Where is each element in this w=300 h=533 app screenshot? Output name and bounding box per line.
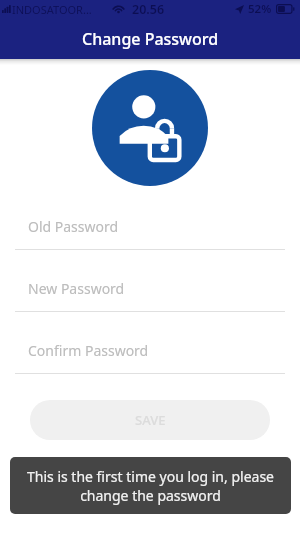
staticText: Old Password [28,217,119,236]
staticText: Change Password [82,28,219,50]
staticText: INDOSATOOR... [12,2,92,17]
staticText: 20.56 [132,1,165,18]
staticText: This is the first time you log in, pleas… [22,467,279,505]
staticText: SAVE [135,411,166,429]
button[interactable]: SAVE [30,400,270,440]
staticText: New Password [28,279,125,298]
staticText: 52% [248,1,272,17]
staticText: Confirm Password [28,341,149,360]
